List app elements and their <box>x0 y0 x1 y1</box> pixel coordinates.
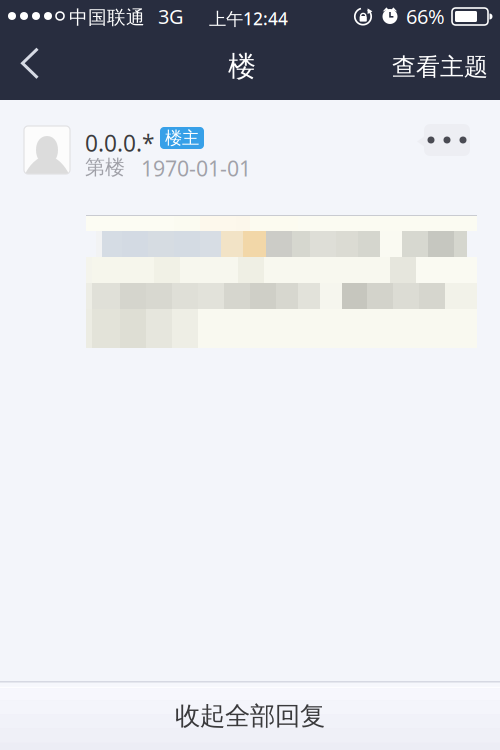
staticText: 查看主题 <box>392 52 488 82</box>
button[interactable]: 楼 <box>212 30 272 103</box>
staticText: 上午12:44 <box>209 7 288 30</box>
staticText: 收起全部回复 <box>175 700 325 731</box>
button[interactable]: Reply options <box>417 124 470 156</box>
staticText: 3G <box>158 3 184 30</box>
staticText: 中国联通 <box>69 6 145 29</box>
button[interactable]: 查看主题 <box>372 30 500 104</box>
staticText: 1970-01-01 <box>141 154 251 182</box>
staticText: 0.0.0.* <box>85 128 154 158</box>
staticText: 第楼 <box>85 155 125 180</box>
button[interactable]: 收起全部回复 <box>0 682 500 750</box>
staticText: 楼 <box>228 49 256 84</box>
staticText: 楼主 <box>165 127 199 149</box>
button[interactable]: Back <box>0 30 65 96</box>
staticText: 66% <box>406 3 445 30</box>
